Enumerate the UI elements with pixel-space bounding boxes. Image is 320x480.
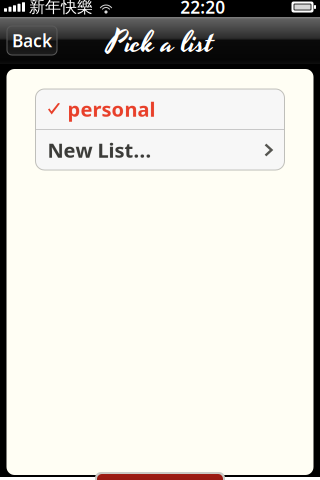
button[interactable]: Back: [7, 26, 57, 55]
staticText: 22:20: [180, 0, 225, 18]
staticText: personal: [67, 96, 155, 122]
button[interactable]: personal: [35, 89, 284, 129]
staticText: New List...: [47, 137, 151, 163]
button[interactable]: New List...: [35, 130, 284, 170]
staticText: 新年快樂: [29, 0, 93, 17]
button[interactable]: Add: [95, 472, 225, 480]
staticText: Pick a list: [107, 21, 213, 66]
staticText: Back: [12, 29, 52, 52]
